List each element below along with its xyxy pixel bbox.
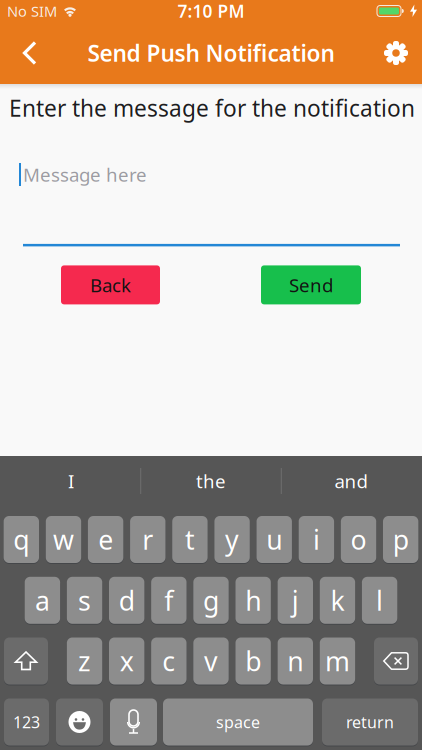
button[interactable]: p bbox=[383, 516, 418, 563]
staticText: h bbox=[245, 583, 261, 618]
button[interactable]: Emoji bbox=[56, 698, 103, 745]
staticText: r bbox=[142, 522, 153, 557]
staticText: o bbox=[350, 522, 366, 557]
button[interactable]: d bbox=[109, 577, 144, 624]
staticText: u bbox=[266, 522, 282, 557]
button[interactable]: and bbox=[281, 456, 421, 505]
button[interactable]: i bbox=[299, 516, 334, 563]
staticText: the bbox=[196, 469, 226, 493]
button[interactable]: o bbox=[341, 516, 376, 563]
button[interactable]: r bbox=[130, 516, 165, 563]
staticText: a bbox=[35, 583, 50, 618]
button[interactable]: Delete bbox=[374, 637, 418, 684]
staticText: and bbox=[334, 469, 367, 493]
staticText: d bbox=[119, 583, 135, 618]
button[interactable]: n bbox=[278, 637, 313, 684]
staticText: l bbox=[376, 583, 383, 618]
staticText: Send Push Notification bbox=[87, 38, 334, 68]
button[interactable]: I bbox=[1, 456, 141, 505]
staticText: w bbox=[53, 522, 74, 557]
staticText: return bbox=[346, 711, 394, 733]
button[interactable]: return bbox=[322, 698, 418, 745]
staticText: x bbox=[120, 643, 134, 679]
staticText: Back bbox=[90, 272, 131, 297]
staticText: i bbox=[313, 522, 320, 557]
staticText: Message here bbox=[23, 162, 147, 187]
button[interactable]: j bbox=[278, 577, 313, 624]
staticText: I bbox=[68, 469, 74, 493]
staticText: k bbox=[330, 583, 344, 618]
button[interactable]: s bbox=[67, 577, 102, 624]
button[interactable]: x bbox=[109, 637, 144, 684]
button[interactable]: t bbox=[172, 516, 208, 563]
button[interactable]: u bbox=[256, 516, 292, 563]
staticText: t bbox=[185, 522, 195, 557]
staticText: g bbox=[203, 583, 219, 618]
button[interactable]: Send bbox=[261, 265, 361, 304]
staticText: y bbox=[225, 522, 239, 557]
button[interactable]: Dictate bbox=[110, 698, 157, 745]
button[interactable]: b bbox=[235, 637, 271, 684]
button[interactable]: z bbox=[67, 637, 102, 684]
staticText: n bbox=[287, 643, 303, 679]
staticText: p bbox=[393, 522, 409, 557]
button[interactable]: h bbox=[235, 577, 271, 624]
button[interactable]: q bbox=[4, 516, 39, 563]
button[interactable]: the bbox=[141, 456, 281, 505]
staticText: 7:10 PM bbox=[177, 0, 244, 22]
button[interactable]: Back bbox=[0, 41, 38, 65]
button[interactable]: a bbox=[25, 577, 60, 624]
button[interactable]: w bbox=[46, 516, 81, 563]
button[interactable]: k bbox=[320, 577, 355, 624]
button[interactable]: g bbox=[193, 577, 229, 624]
button[interactable]: Shift bbox=[4, 637, 48, 684]
button[interactable]: c bbox=[151, 637, 186, 684]
button[interactable]: m bbox=[320, 637, 355, 684]
staticText: Send bbox=[289, 272, 333, 297]
staticText: Enter the message for the notification bbox=[9, 93, 415, 123]
staticText: q bbox=[13, 522, 29, 557]
staticText: No SIM bbox=[7, 1, 57, 21]
staticText: 123 bbox=[13, 711, 40, 733]
staticText: e bbox=[98, 522, 113, 557]
staticText: c bbox=[162, 643, 175, 679]
staticText: s bbox=[78, 583, 91, 618]
staticText: f bbox=[164, 583, 173, 618]
button[interactable]: Settings bbox=[384, 41, 422, 65]
button[interactable]: space bbox=[163, 698, 313, 745]
button[interactable]: e bbox=[88, 516, 123, 563]
button[interactable]: l bbox=[362, 577, 397, 624]
staticText: m bbox=[325, 643, 350, 679]
staticText: b bbox=[245, 643, 261, 679]
button[interactable]: v bbox=[193, 637, 229, 684]
staticText: space bbox=[216, 711, 260, 733]
button[interactable]: y bbox=[214, 516, 250, 563]
staticText: v bbox=[204, 643, 218, 679]
button[interactable]: f bbox=[151, 577, 187, 624]
staticText: z bbox=[78, 643, 91, 679]
button[interactable]: Back bbox=[61, 265, 160, 304]
staticText: j bbox=[292, 583, 299, 618]
button[interactable]: 123 bbox=[4, 698, 49, 745]
